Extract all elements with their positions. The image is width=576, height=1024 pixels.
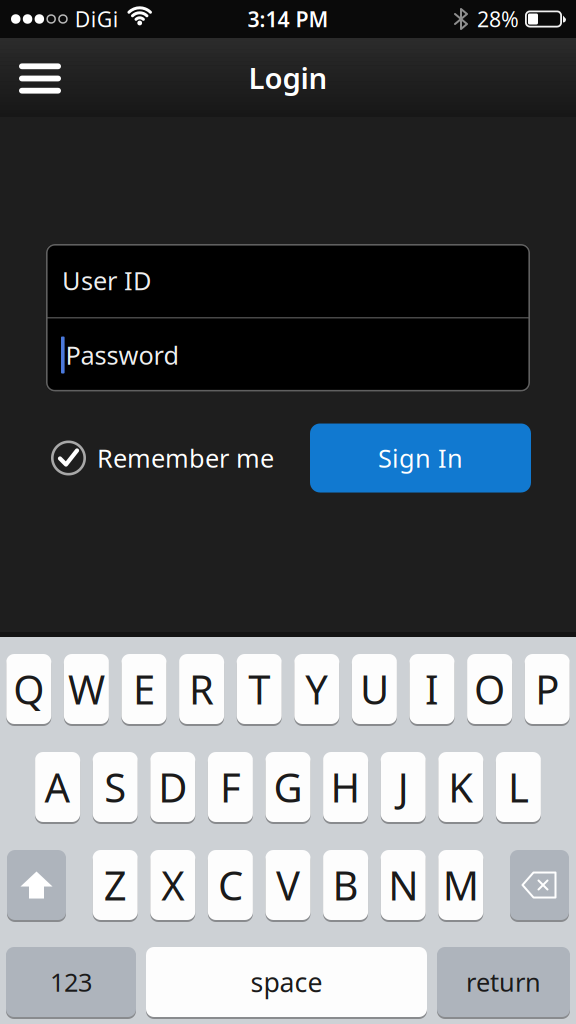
button[interactable]: Menu xyxy=(0,61,61,94)
staticText: 3:14 PM xyxy=(247,5,328,33)
staticText: N xyxy=(388,858,418,911)
button[interactable]: K xyxy=(438,752,483,824)
staticText: M xyxy=(443,858,479,911)
button[interactable]: Sign In xyxy=(310,423,531,492)
staticText: F xyxy=(220,760,241,813)
staticText: G xyxy=(273,760,302,813)
staticText: return xyxy=(466,965,541,999)
button[interactable]: Password xyxy=(46,318,530,391)
button[interactable]: G xyxy=(265,752,310,824)
staticText: 123 xyxy=(50,965,92,999)
staticText: B xyxy=(333,858,359,911)
button[interactable]: P xyxy=(525,654,570,726)
button[interactable]: C xyxy=(208,850,253,922)
staticText: P xyxy=(535,662,559,715)
button[interactable]: I xyxy=(409,654,454,726)
button[interactable]: W xyxy=(64,654,109,726)
staticText: Sign In xyxy=(378,441,463,475)
button[interactable]: 123 xyxy=(6,947,136,1019)
button[interactable]: S xyxy=(93,752,138,824)
staticText: Z xyxy=(104,858,127,911)
button[interactable]: M xyxy=(438,850,483,922)
button[interactable]: Shift xyxy=(7,850,66,922)
button[interactable]: E xyxy=(121,654,166,726)
button[interactable]: return xyxy=(437,947,570,1019)
staticText: V xyxy=(276,858,300,911)
staticText: C xyxy=(218,858,243,911)
button[interactable]: Z xyxy=(93,850,138,922)
staticText: H xyxy=(331,760,361,813)
button[interactable]: N xyxy=(381,850,426,922)
button[interactable]: V xyxy=(265,850,310,922)
staticText: J xyxy=(398,760,409,813)
staticText: I xyxy=(425,662,439,715)
button[interactable]: User ID xyxy=(46,244,530,317)
button[interactable]: A xyxy=(35,752,80,824)
button[interactable]: X xyxy=(150,850,195,922)
staticText: Password xyxy=(66,338,180,372)
button[interactable]: Delete xyxy=(510,850,569,922)
staticText: space xyxy=(250,964,322,1000)
button[interactable]: U xyxy=(352,654,397,726)
button[interactable]: R xyxy=(179,654,224,726)
button[interactable]: B xyxy=(323,850,368,922)
staticText: User ID xyxy=(62,264,151,297)
staticText: Y xyxy=(305,662,328,715)
button[interactable]: Q xyxy=(6,654,51,726)
staticText: U xyxy=(360,662,389,715)
button[interactable]: F xyxy=(208,752,253,824)
button[interactable]: J xyxy=(381,752,426,824)
staticText: K xyxy=(448,760,473,813)
button[interactable]: D xyxy=(150,752,195,824)
button[interactable]: space xyxy=(146,947,427,1019)
button[interactable]: L xyxy=(496,752,541,824)
button[interactable]: O xyxy=(467,654,512,726)
staticText: E xyxy=(133,662,155,715)
button[interactable]: H xyxy=(323,752,368,824)
staticText: 28% xyxy=(477,5,519,33)
staticText: Remember me xyxy=(97,441,274,475)
staticText: Q xyxy=(13,662,44,715)
button[interactable]: T xyxy=(237,654,282,726)
staticText: T xyxy=(248,662,270,715)
staticText: O xyxy=(474,662,505,715)
button[interactable]: Y xyxy=(294,654,339,726)
staticText: L xyxy=(508,760,529,813)
staticText: W xyxy=(68,662,105,715)
staticText: X xyxy=(161,858,184,911)
staticText: A xyxy=(45,760,71,813)
staticText: DiGi xyxy=(75,5,119,33)
button[interactable]: Remember me xyxy=(51,440,301,475)
staticText: R xyxy=(189,662,214,715)
staticText: D xyxy=(158,760,187,813)
staticText: S xyxy=(104,760,126,813)
staticText: Login xyxy=(248,58,327,97)
